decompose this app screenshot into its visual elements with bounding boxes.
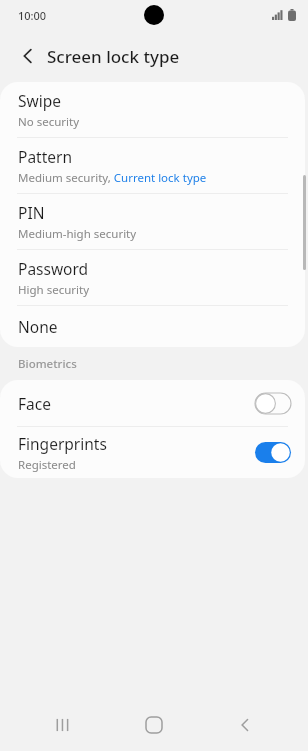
button[interactable]: Pattern: [0, 138, 305, 193]
button[interactable]: Home: [127, 699, 181, 751]
staticText: Face: [18, 393, 51, 414]
staticText: Pattern: [18, 146, 72, 167]
button[interactable]: Back: [218, 699, 272, 751]
staticText: High security: [18, 282, 90, 298]
button[interactable]: Face: [0, 380, 305, 426]
button[interactable]: Fingerprints toggle: [255, 442, 291, 463]
button[interactable]: Recent apps: [37, 699, 91, 751]
staticText: 10:00: [18, 8, 47, 23]
button[interactable]: None: [0, 306, 305, 347]
staticText: Medium security, Current lock type: [18, 170, 207, 186]
button[interactable]: PIN: [0, 194, 305, 249]
staticText: Swipe: [18, 90, 61, 111]
button[interactable]: Back: [8, 36, 48, 76]
button[interactable]: Fingerprints: [0, 427, 305, 478]
staticText: None: [18, 316, 58, 337]
staticText: Screen lock type: [47, 45, 180, 68]
staticText: Fingerprints: [18, 433, 107, 454]
staticText: No security: [18, 114, 80, 130]
button[interactable]: Swipe: [0, 82, 305, 137]
staticText: Biometrics: [18, 356, 77, 372]
staticText: Registered: [18, 457, 76, 473]
button[interactable]: Password: [0, 250, 305, 305]
button[interactable]: Face toggle: [255, 393, 291, 414]
staticText: Medium-high security: [18, 226, 137, 242]
staticText: PIN: [18, 202, 45, 223]
staticText: Password: [18, 258, 89, 279]
